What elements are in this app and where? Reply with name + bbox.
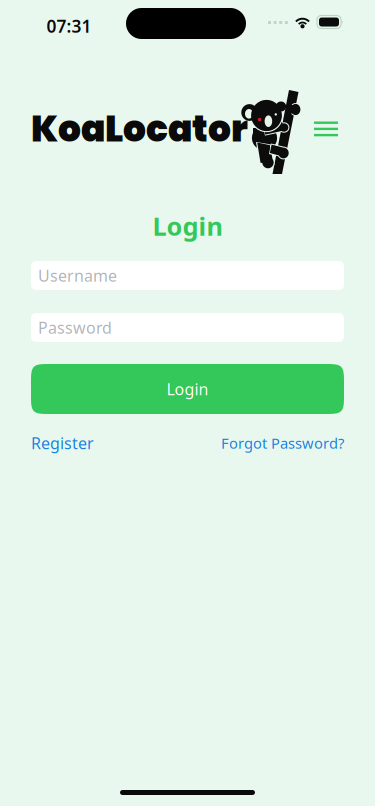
- button[interactable]: Menu: [306, 109, 346, 149]
- staticText: 07:31: [46, 14, 91, 37]
- button[interactable]: Forgot Password?: [221, 433, 344, 453]
- staticText: Login: [166, 378, 208, 400]
- staticText: Login: [152, 209, 222, 243]
- staticText: Username: [38, 265, 117, 286]
- staticText: Password: [38, 317, 112, 338]
- button[interactable]: Register: [31, 432, 94, 454]
- button[interactable]: Login: [31, 364, 344, 414]
- staticText: Register: [31, 432, 94, 454]
- staticText: KoaLocator: [31, 104, 248, 154]
- staticText: Forgot Password?: [221, 433, 344, 453]
